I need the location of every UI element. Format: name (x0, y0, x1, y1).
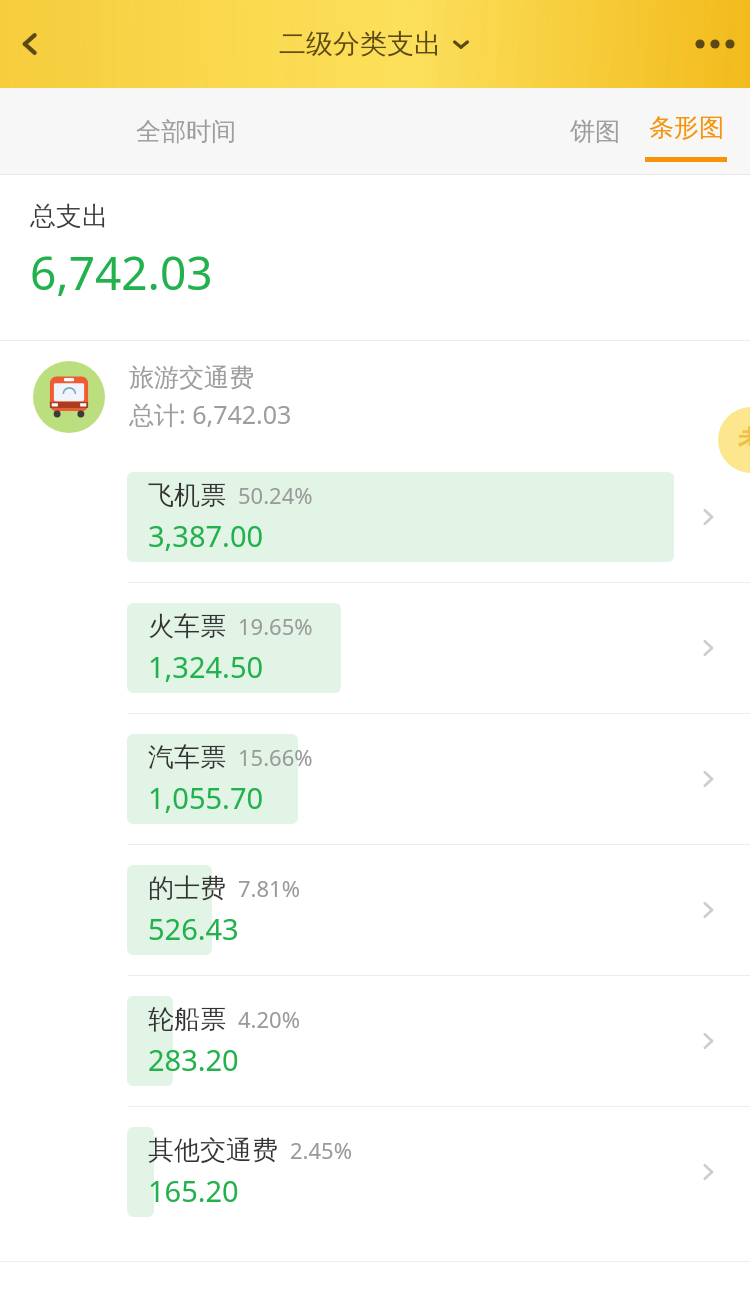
staticText: 19.65% (238, 611, 313, 641)
button[interactable]: 二级分类支出 (279, 27, 471, 61)
staticText: 526.43 (148, 909, 239, 948)
staticText: 总支出 (30, 200, 108, 233)
button[interactable]: 条形图 (630, 88, 742, 175)
button[interactable]: 的士费 (0, 845, 750, 975)
staticText: 飞机票 (148, 479, 226, 512)
staticText: 二级分类支出 (279, 27, 441, 61)
staticText: 旅游交通费 (129, 362, 254, 393)
staticText: 全部时间 (136, 116, 236, 147)
staticText: 考 (738, 424, 750, 457)
staticText: 15.66% (238, 742, 313, 772)
staticText: 1,055.70 (148, 778, 264, 817)
staticText: 的士费 (148, 872, 226, 905)
staticText: 其他交通费 (148, 1134, 278, 1167)
staticText: 总计: 6,742.03 (129, 397, 292, 431)
button[interactable]: Back (0, 14, 60, 74)
staticText: 1,324.50 (148, 647, 264, 686)
staticText: 165.20 (148, 1171, 239, 1210)
staticText: 火车票 (148, 610, 226, 643)
staticText: 2.45% (290, 1135, 352, 1165)
button[interactable]: 全部时间 (136, 116, 236, 147)
button[interactable]: 火车票 (0, 583, 750, 713)
staticText: 6,742.03 (30, 241, 213, 304)
staticText: 50.24% (238, 480, 313, 510)
button[interactable]: 轮船票 (0, 976, 750, 1106)
staticText: 3,387.00 (148, 516, 264, 555)
button[interactable]: More options (680, 9, 750, 79)
staticText: 4.20% (238, 1004, 300, 1034)
button[interactable]: 其他交通费 (0, 1107, 750, 1237)
staticText: 条形图 (649, 112, 724, 143)
button[interactable]: 饼图 (570, 88, 620, 175)
button[interactable]: Budget shortcut (718, 407, 750, 473)
button[interactable]: 旅游交通费 (0, 341, 750, 452)
staticText: 饼图 (570, 116, 620, 147)
button[interactable]: 汽车票 (0, 714, 750, 844)
staticText: 7.81% (238, 873, 300, 903)
staticText: 汽车票 (148, 741, 226, 774)
staticText: 轮船票 (148, 1003, 226, 1036)
button[interactable]: 飞机票 (0, 452, 750, 582)
staticText: 283.20 (148, 1040, 239, 1079)
